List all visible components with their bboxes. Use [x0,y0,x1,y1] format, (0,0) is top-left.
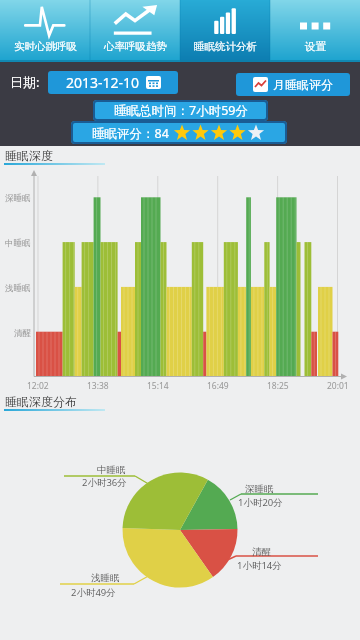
staticText: 13:38 [87,380,109,392]
button[interactable]: 睡眠评分：84 [71,121,287,144]
staticText: 月睡眠评分 [273,77,333,92]
staticText: 20:01 [327,380,349,392]
staticText: 日期: [10,73,40,91]
staticText: 中睡眠 [5,238,31,248]
staticText: 深睡眠 [5,193,31,203]
button[interactable]: 心率呼吸趋势 [90,0,180,62]
staticText: 1小时14分 [237,559,282,572]
staticText: 2小时49分 [71,586,116,599]
staticText: 睡眠深度 [5,148,53,163]
staticText: 清醒 [252,546,271,558]
staticText: 浅睡眠 [91,572,120,584]
staticText: 睡眠统计分析 [194,40,257,53]
staticText: 实时心跳呼吸 [14,40,77,53]
button[interactable]: 实时心跳呼吸 [0,0,90,62]
staticText: 设置 [305,40,326,53]
staticText: 清醒 [14,328,31,338]
staticText: 深睡眠 [245,483,274,495]
staticText: 1小时20分 [238,496,283,509]
staticText: 睡眠评分：84 [92,125,169,142]
staticText: 睡眠深度分布 [5,394,77,409]
button[interactable]: 睡眠总时间：7小时59分 [93,100,268,121]
button[interactable]: 2013-12-10 [48,71,178,94]
staticText: 16:49 [207,380,229,392]
staticText: 2小时36分 [82,476,127,489]
staticText: 12:02 [27,380,49,392]
staticText: 心率呼吸趋势 [104,40,167,53]
button[interactable]: 设置 [270,0,360,62]
staticText: 浅睡眠 [5,283,31,293]
staticText: 15:14 [147,380,169,392]
button[interactable]: 睡眠统计分析 [180,0,270,62]
staticText: 18:25 [267,380,289,392]
button[interactable]: 月睡眠评分 [236,73,350,96]
staticText: 2013-12-10 [66,73,140,92]
staticText: 睡眠总时间：7小时59分 [114,102,248,119]
staticText: 中睡眠 [97,464,126,476]
